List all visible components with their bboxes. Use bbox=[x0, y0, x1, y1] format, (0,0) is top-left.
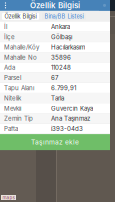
staticText: Taşınmaz ekle bbox=[31, 138, 79, 146]
staticText: Mevkii bbox=[4, 105, 21, 112]
staticText: Ana Taşınmaz bbox=[51, 115, 90, 122]
staticText: Ada bbox=[4, 64, 15, 71]
staticText: Parsel bbox=[4, 74, 21, 81]
staticText: Güvercin Kaya bbox=[51, 105, 93, 112]
staticText: Pafta bbox=[4, 125, 18, 132]
button[interactable]: Menu bbox=[0, 0, 11, 11]
staticText: Bina/BB Listesi bbox=[44, 13, 83, 20]
staticText: Zemin Tip bbox=[4, 115, 33, 122]
staticText: İl bbox=[4, 23, 7, 30]
staticText: Gölbaşı bbox=[51, 33, 72, 41]
button[interactable]: Bina/BB Listesi bbox=[42, 13, 86, 20]
staticText: 35896 bbox=[51, 54, 71, 61]
staticText: Tarla bbox=[51, 94, 64, 102]
staticText: İlçe bbox=[4, 33, 15, 41]
staticText: 67 bbox=[51, 74, 58, 81]
staticText: Hacılarkasım bbox=[51, 43, 85, 51]
staticText: Özellik Bilgisi bbox=[30, 1, 80, 10]
staticText: Mahalle/Köy bbox=[4, 43, 39, 51]
button[interactable]: Özellik Bilgisi bbox=[2, 13, 39, 20]
staticText: 6.799,91 bbox=[51, 84, 76, 92]
staticText: Ankara bbox=[51, 23, 70, 30]
staticText: Nitelik bbox=[4, 94, 21, 102]
staticText: Özellik Bilgisi bbox=[4, 13, 36, 20]
staticText: 110248 bbox=[51, 64, 71, 71]
staticText: Mahalle No bbox=[4, 54, 37, 61]
staticText: Tapu Alanı bbox=[4, 84, 34, 92]
staticText: maps bbox=[2, 195, 14, 200]
staticText: i393-04d3 bbox=[51, 125, 83, 132]
button[interactable]: Taşınmaz ekle bbox=[0, 134, 110, 150]
button[interactable]: Options bbox=[99, 0, 110, 11]
